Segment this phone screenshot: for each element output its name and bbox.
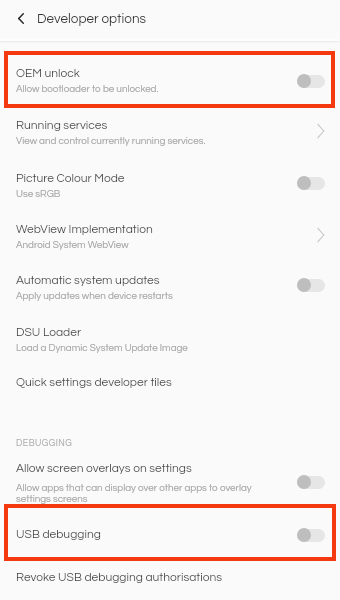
button[interactable]: Toggle: [293, 71, 329, 91]
staticText: Quick settings developer tiles: [16, 376, 172, 388]
button[interactable]: Open: [305, 120, 335, 142]
button[interactable]: WebView Implementation: [0, 216, 340, 258]
staticText: Revoke USB debugging authorisations: [16, 571, 223, 583]
staticText: Android System WebView: [16, 240, 276, 250]
staticText: View and control currently running servi…: [16, 136, 276, 146]
button[interactable]: Toggle: [293, 525, 329, 545]
staticText: Developer options: [37, 12, 147, 26]
staticText: DEBUGGING: [16, 439, 73, 448]
button[interactable]: Back: [0, 0, 33, 40]
button[interactable]: Allow screen overlays on settings: [0, 455, 340, 497]
button[interactable]: Automatic system updates: [0, 267, 340, 309]
button[interactable]: DSU Loader: [0, 319, 340, 361]
staticText: Running services: [16, 119, 108, 131]
staticText: Picture Colour Mode: [16, 172, 125, 184]
button[interactable]: USB debugging: [0, 521, 340, 549]
button[interactable]: Running services: [0, 112, 340, 154]
staticText: DSU Loader: [16, 326, 82, 338]
staticText: Use sRGB: [16, 189, 276, 199]
staticText: WebView Implementation: [16, 223, 153, 235]
staticText: Load a Dynamic System Update Image: [16, 343, 276, 353]
button[interactable]: OEM unlock: [0, 60, 340, 102]
staticText: Apply updates when device restarts: [16, 291, 276, 301]
button[interactable]: Picture Colour Mode: [0, 165, 340, 207]
button[interactable]: Toggle: [293, 173, 329, 193]
button[interactable]: Open: [305, 224, 335, 246]
button[interactable]: Toggle: [293, 275, 329, 295]
button[interactable]: Toggle: [293, 472, 329, 492]
button[interactable]: Revoke USB debugging authorisations: [0, 564, 340, 592]
staticText: Allow bootloader to be unlocked.: [16, 84, 276, 94]
staticText: Allow apps that can display over other a…: [16, 483, 269, 504]
staticText: Allow screen overlays on settings: [16, 462, 192, 474]
staticText: OEM unlock: [16, 67, 80, 79]
button[interactable]: Quick settings developer tiles: [0, 369, 340, 397]
staticText: Automatic system updates: [16, 274, 160, 286]
staticText: USB debugging: [16, 528, 101, 540]
